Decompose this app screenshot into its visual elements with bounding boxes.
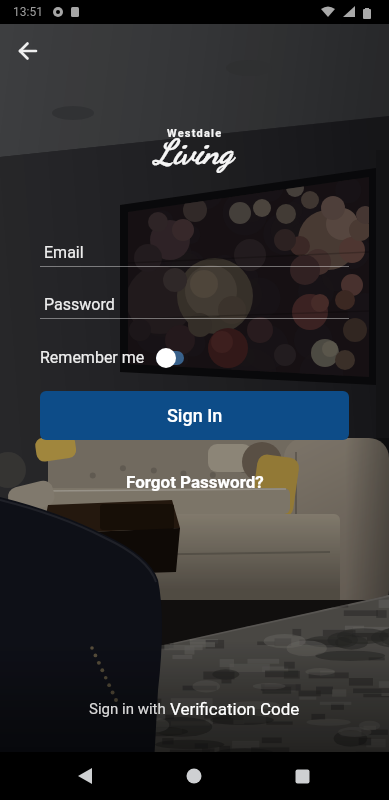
button[interactable] <box>10 33 46 69</box>
button[interactable] <box>148 344 192 372</box>
button[interactable]: Forgot Password? <box>126 472 264 492</box>
button[interactable]: Email <box>40 241 349 271</box>
button[interactable]: Password <box>40 293 349 323</box>
staticText: Forgot Password? <box>126 472 264 492</box>
staticText: Password <box>44 295 115 314</box>
staticText: Sign In <box>167 405 223 426</box>
button[interactable] <box>170 752 218 800</box>
staticText: Sign in with <box>89 700 170 718</box>
staticText: Remember me <box>40 348 145 367</box>
staticText: 13:51 <box>13 5 43 19</box>
staticText: Verification Code <box>170 699 300 719</box>
button[interactable] <box>278 752 326 800</box>
button[interactable]: Sign in with <box>89 699 300 719</box>
button[interactable]: Sign In <box>40 391 349 440</box>
button[interactable] <box>62 752 110 800</box>
staticText: Westdale <box>167 127 223 140</box>
staticText: Email <box>44 243 84 262</box>
staticText: Living <box>155 132 234 173</box>
